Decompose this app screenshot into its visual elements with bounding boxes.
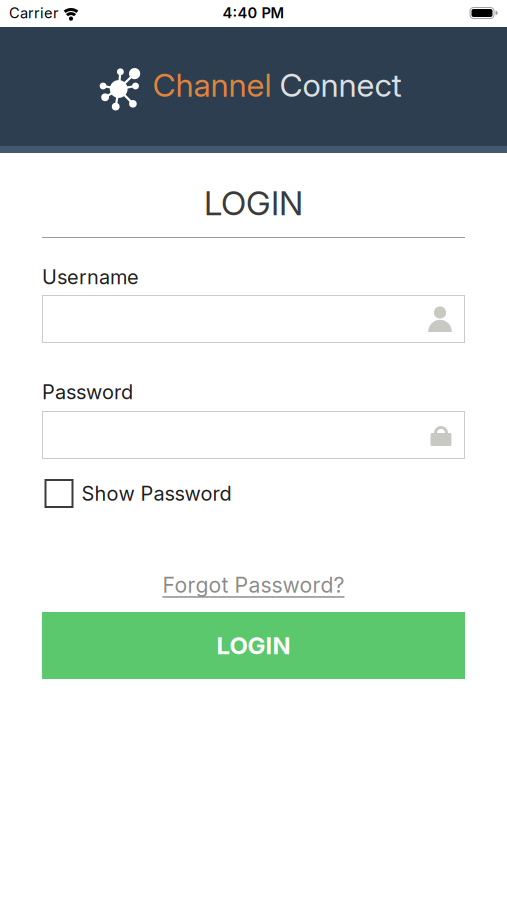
staticText: Connect	[279, 66, 401, 104]
button[interactable]: Show Password	[44, 479, 467, 508]
staticText: Carrier	[9, 4, 59, 22]
button[interactable]: Username	[42, 295, 465, 343]
staticText: Password	[42, 380, 133, 404]
staticText: Forgot Password?	[162, 572, 344, 598]
staticText: Channel	[152, 66, 279, 104]
staticText: Username	[42, 265, 139, 289]
staticText: Show Password	[81, 482, 231, 505]
button[interactable]: LOGIN	[42, 612, 465, 679]
staticText: LOGIN	[204, 183, 303, 223]
staticText: 4:40 PM	[222, 4, 284, 22]
button[interactable]: Forgot Password?	[162, 572, 344, 598]
button[interactable]: Password	[42, 411, 465, 459]
staticText: LOGIN	[216, 631, 290, 660]
